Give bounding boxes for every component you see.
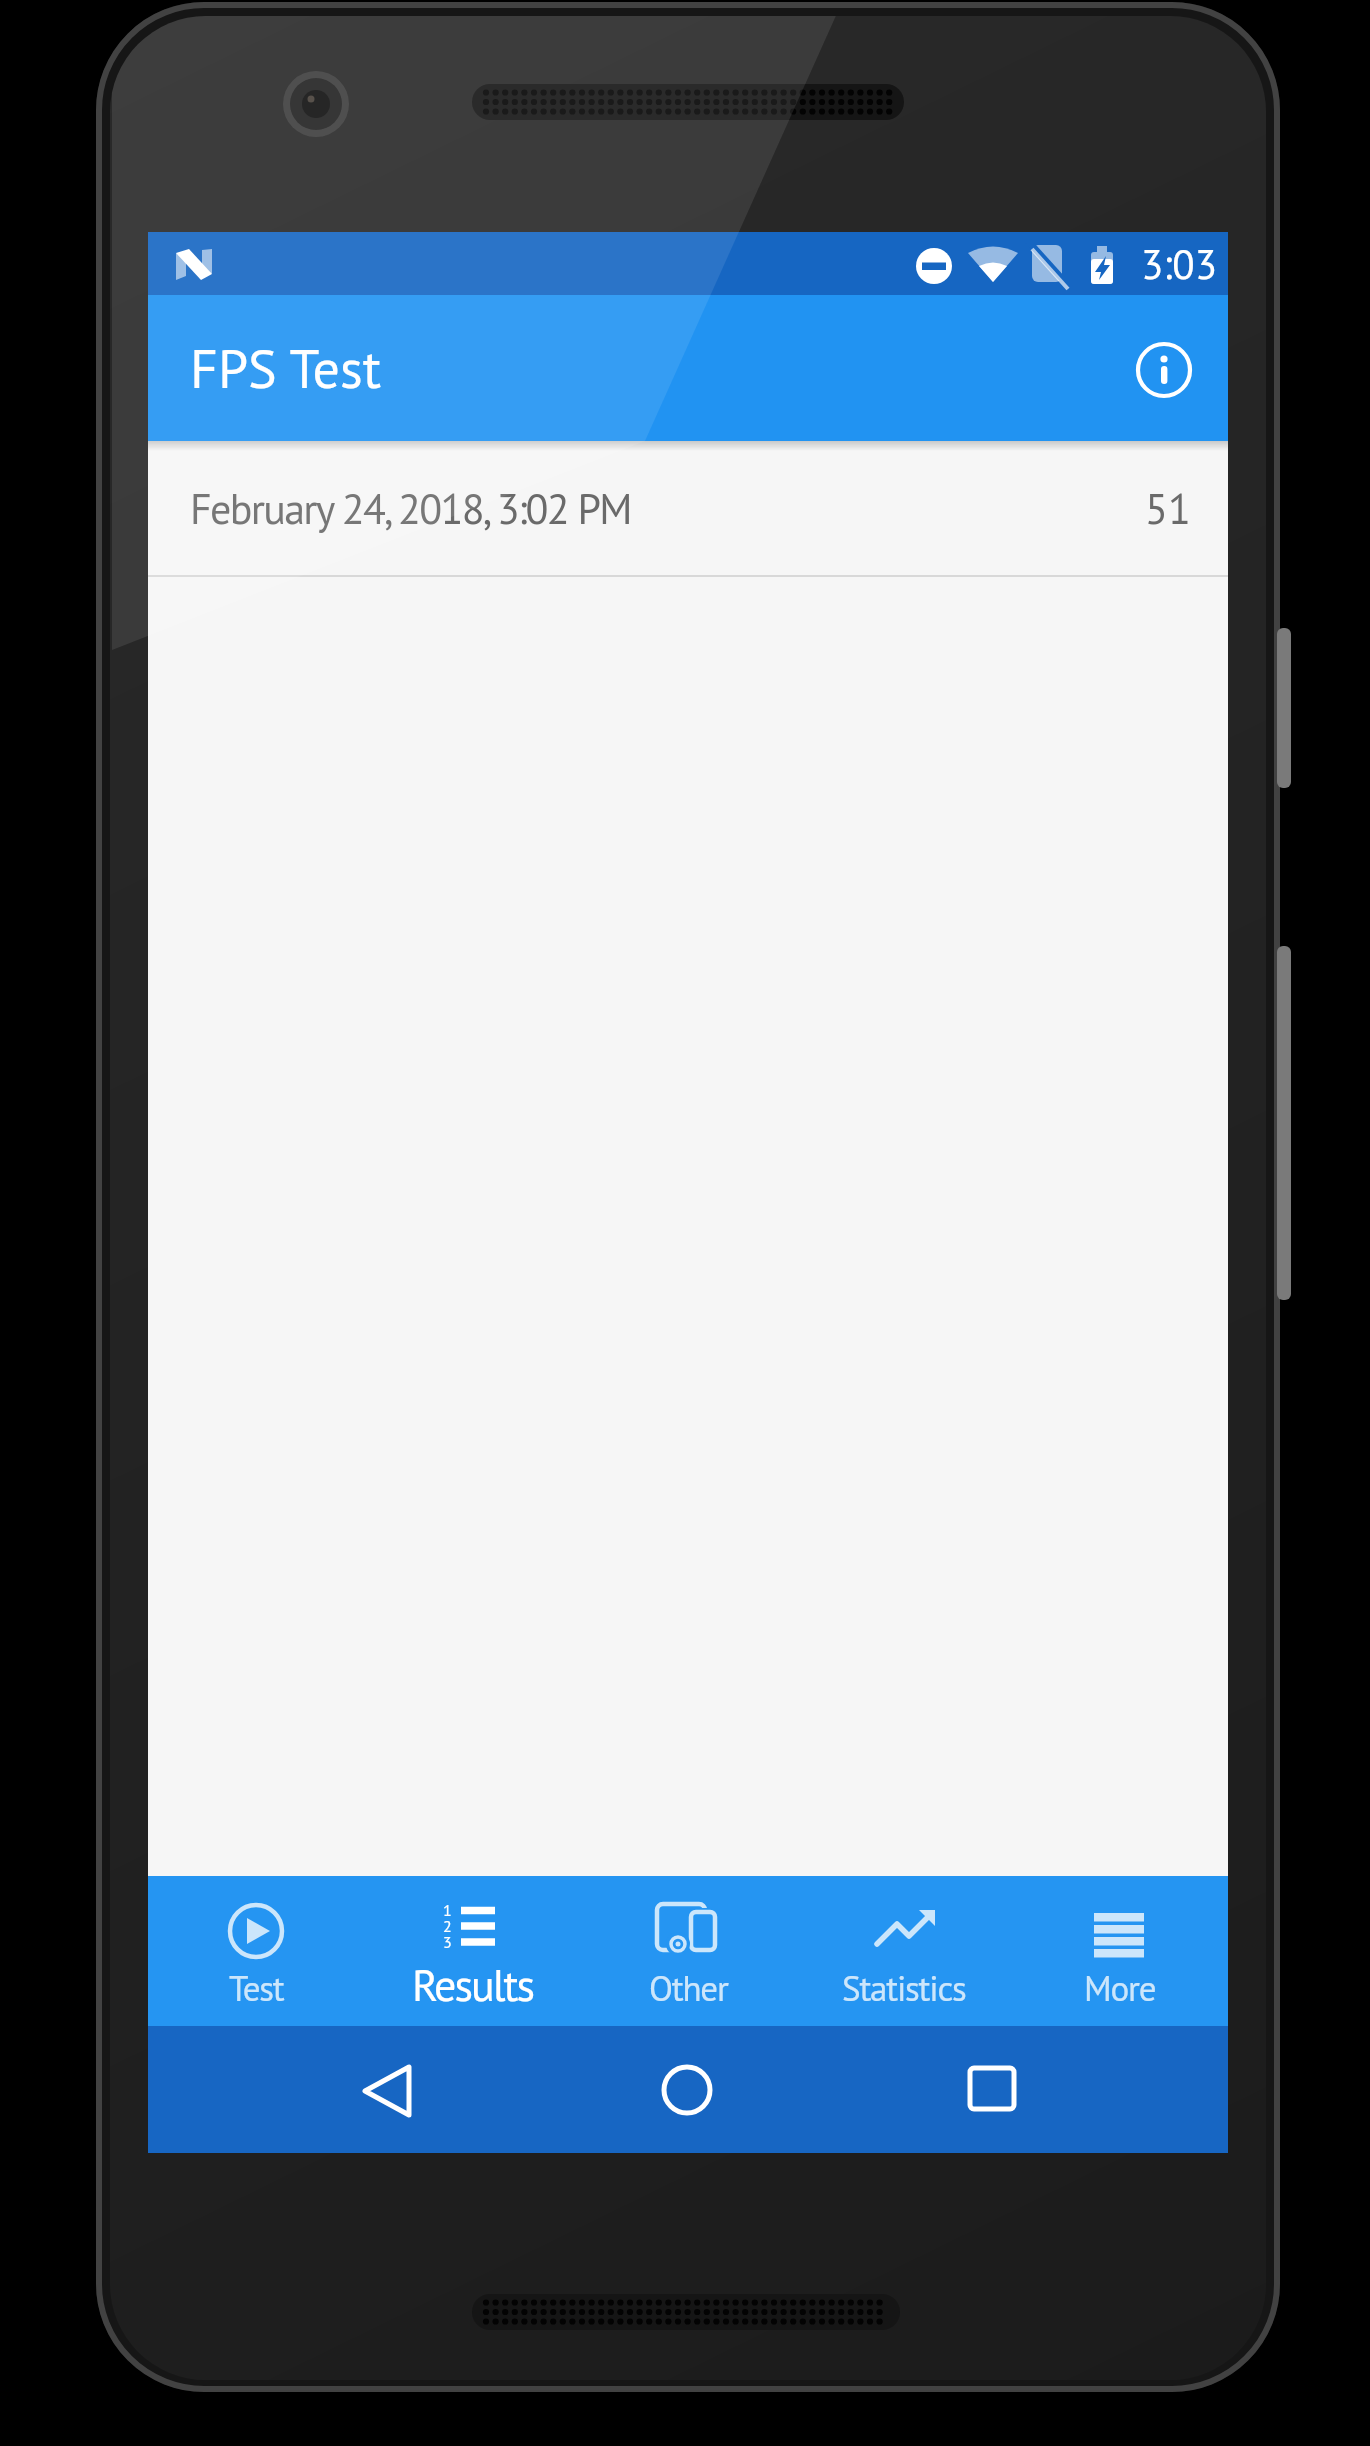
staticText: 1 xyxy=(443,1900,452,1921)
staticText: Results xyxy=(412,1956,533,2013)
staticText: Other xyxy=(649,1965,728,2010)
staticText: Statistics xyxy=(842,1965,966,2010)
button[interactable] xyxy=(1136,342,1192,398)
button[interactable]: Test xyxy=(148,1876,364,2026)
staticText: FPS Test xyxy=(190,333,382,403)
button[interactable]: Other xyxy=(580,1876,796,2026)
staticText: 3:03 xyxy=(1141,237,1218,290)
staticText: February 24, 2018, 3:02 PM xyxy=(190,481,631,535)
staticText: 2 xyxy=(443,1916,452,1937)
staticText: 3 xyxy=(443,1932,452,1953)
button[interactable]: More xyxy=(1012,1876,1228,2026)
staticText: 51 xyxy=(1145,481,1191,535)
button[interactable]: Statistics xyxy=(796,1876,1012,2026)
button[interactable] xyxy=(148,2026,508,2153)
button[interactable]: February 24, 2018, 3:02 PM xyxy=(148,441,1228,575)
button[interactable] xyxy=(508,2026,868,2153)
staticText: More xyxy=(1084,1965,1156,2010)
button[interactable] xyxy=(868,2026,1228,2153)
button[interactable]: Results xyxy=(364,1876,580,2026)
staticText: Test xyxy=(229,1965,284,2010)
